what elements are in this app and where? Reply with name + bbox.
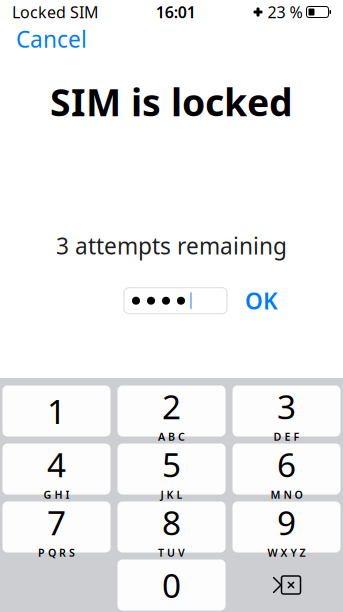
- button[interactable]: 1: [2, 385, 110, 436]
- staticText: Cancel: [16, 24, 87, 54]
- staticText: A B C: [158, 429, 185, 444]
- staticText: OK: [245, 286, 278, 316]
- staticText: D E F: [273, 429, 299, 444]
- button[interactable]: 4: [2, 443, 110, 494]
- staticText: 3 attempts remaining: [56, 231, 287, 261]
- staticText: W X Y Z: [267, 545, 305, 560]
- staticText: 7: [47, 500, 66, 545]
- staticText: M N O: [270, 487, 302, 502]
- staticText: Locked SIM: [12, 1, 99, 23]
- button[interactable]: OK: [235, 281, 288, 321]
- staticText: 3: [277, 384, 296, 429]
- staticText: J K L: [160, 487, 182, 502]
- button[interactable]: 6: [232, 443, 340, 494]
- button[interactable]: Delete: [232, 559, 340, 610]
- button[interactable]: 8: [117, 501, 225, 552]
- button[interactable]: 0: [117, 559, 225, 610]
- staticText: 5: [162, 442, 181, 487]
- staticText: G H I: [43, 487, 69, 502]
- staticText: 6: [277, 442, 296, 487]
- button[interactable]: 9: [232, 501, 340, 552]
- staticText: SIM is locked: [50, 77, 293, 127]
- staticText: T U V: [158, 545, 185, 560]
- button[interactable]: 7: [2, 501, 110, 552]
- staticText: 23 %: [267, 1, 302, 23]
- staticText: 0: [162, 563, 181, 607]
- staticText: P Q R S: [38, 545, 75, 560]
- button[interactable]: 3: [232, 385, 340, 436]
- staticText: 4: [47, 442, 66, 487]
- staticText: 8: [162, 500, 181, 545]
- staticText: 9: [277, 500, 296, 545]
- staticText: 2: [162, 384, 181, 429]
- button[interactable]: 2: [117, 385, 225, 436]
- button[interactable]: 5: [117, 443, 225, 494]
- button[interactable]: Cancel: [0, 18, 103, 60]
- staticText: 1: [47, 389, 66, 433]
- staticText: 16:01: [156, 1, 196, 23]
